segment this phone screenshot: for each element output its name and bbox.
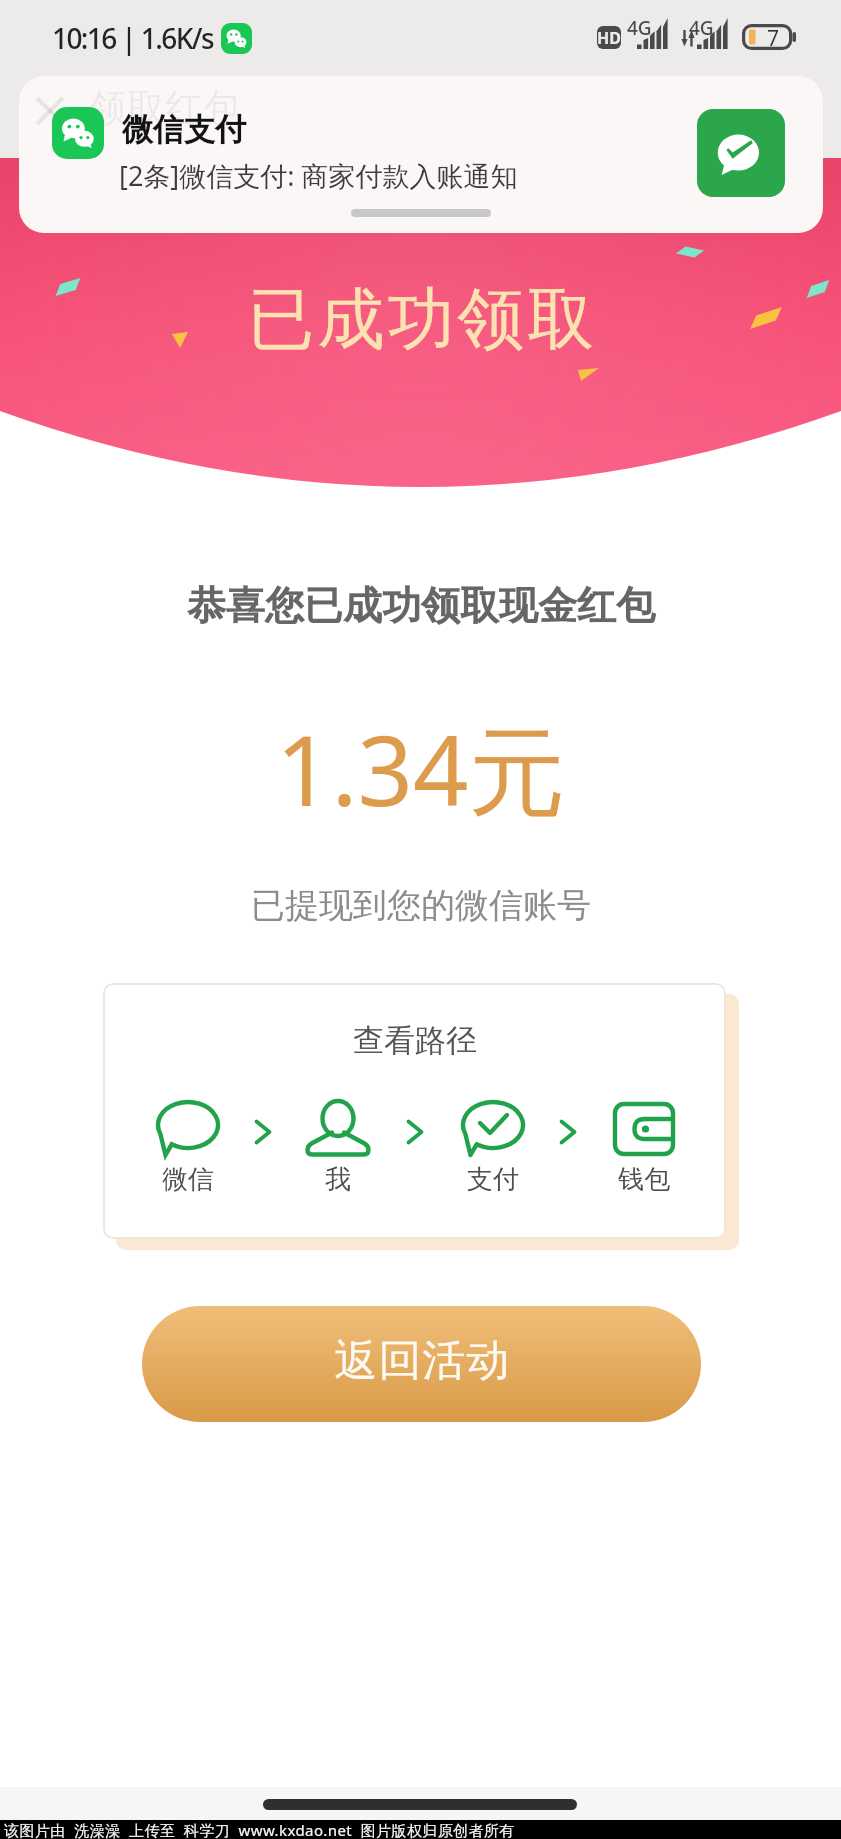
button[interactable]: Pay (448, 1096, 538, 1192)
button[interactable]: Me (293, 1096, 383, 1192)
staticText: 1.34元 (276, 702, 566, 834)
staticText: 已提现到您的微信账号 (251, 884, 591, 927)
staticText: 微信支付 (122, 110, 246, 149)
staticText: HD (597, 27, 621, 49)
staticText: 我 (325, 1163, 351, 1196)
other: Wallet (612, 1100, 676, 1158)
other: WeChat (156, 1100, 220, 1158)
button[interactable]: 领取红包 (19, 76, 823, 233)
staticText: 4G (689, 15, 714, 41)
staticText: 10:16 | 1.6K/s (52, 19, 214, 57)
staticText: [2条]微信支付: 商家付款入账通知 (119, 157, 518, 194)
button[interactable]: 查看路径 (103, 983, 726, 1239)
button[interactable]: Wallet (599, 1096, 689, 1192)
staticText: 领取红包 (89, 84, 241, 132)
other: WeChat Pay (697, 109, 785, 197)
staticText: 恭喜您已成功领取现金红包 (187, 581, 655, 630)
other: Me (306, 1100, 370, 1158)
staticText: 4G (627, 15, 652, 41)
staticText: 已成功领取 (246, 277, 596, 361)
staticText: 返回活动 (334, 1334, 510, 1388)
button[interactable]: 返回活动 (142, 1306, 701, 1422)
other: Pay (461, 1100, 525, 1158)
staticText: 查看路径 (353, 1021, 477, 1060)
staticText: 微信 (162, 1163, 214, 1196)
staticText: 钱包 (618, 1163, 670, 1196)
staticText: 7 (767, 24, 780, 53)
staticText: 支付 (467, 1163, 519, 1196)
other: Home (263, 1799, 577, 1810)
button[interactable]: WeChat (143, 1096, 233, 1192)
staticText: 该图片由 洗澡澡 上传至 科学刀 www.kxdao.net 图片版权归原创者所… (4, 1820, 515, 1839)
